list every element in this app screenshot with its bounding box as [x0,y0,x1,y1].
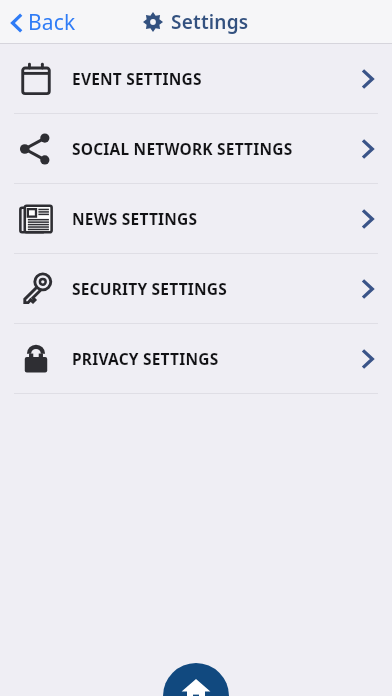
staticText: PRIVACY SETTINGS [72,348,219,369]
staticText: SECURITY SETTINGS [72,278,227,299]
staticText: NEWS SETTINGS [72,208,198,229]
button[interactable]: EVENT SETTINGS [0,44,392,113]
button[interactable]: PRIVACY SETTINGS [0,324,392,393]
staticText: Back [28,8,76,37]
button[interactable]: Home [163,663,229,696]
button[interactable]: SOCIAL NETWORK SETTINGS [0,114,392,183]
button[interactable]: SECURITY SETTINGS [0,254,392,323]
button[interactable]: Back [6,4,80,41]
staticText: Settings [171,9,249,35]
staticText: SOCIAL NETWORK SETTINGS [72,138,293,159]
button[interactable]: NEWS SETTINGS [0,184,392,253]
staticText: EVENT SETTINGS [72,68,202,89]
